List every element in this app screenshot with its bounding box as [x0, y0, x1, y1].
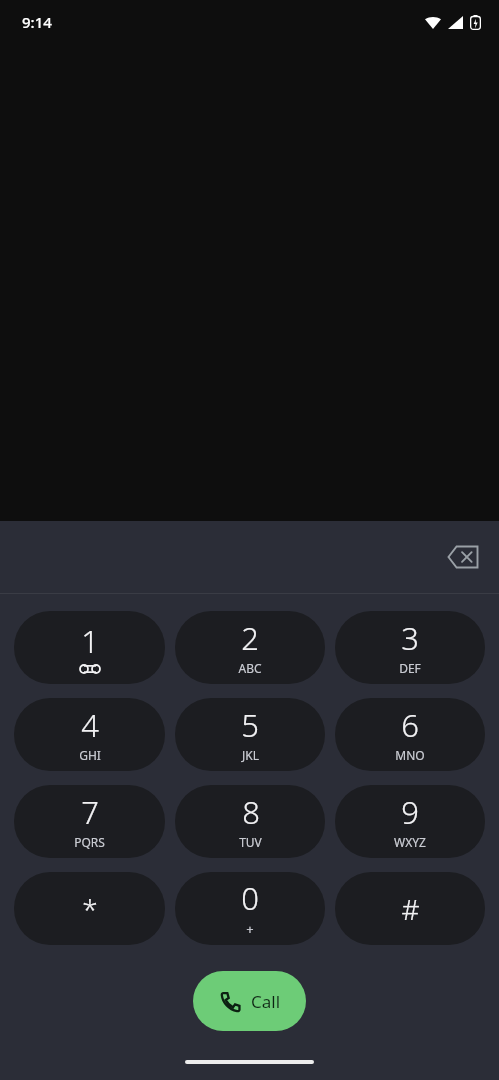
staticText: 9:14 [22, 12, 52, 32]
staticText: # [401, 890, 420, 928]
staticText: JKL [242, 747, 259, 763]
staticText: 9 [401, 791, 419, 833]
staticText: 2 [241, 617, 259, 659]
staticText: 4 [81, 704, 99, 746]
button[interactable]: Call [193, 971, 306, 1031]
button[interactable]: 9 [335, 785, 485, 858]
button[interactable]: 1 [14, 611, 165, 684]
button[interactable]: 3 [335, 611, 485, 684]
staticText: 5 [241, 704, 259, 746]
button[interactable]: 4 [14, 698, 165, 771]
staticText: GHI [79, 747, 101, 763]
staticText: 7 [81, 791, 99, 833]
button[interactable]: Backspace [435, 529, 491, 585]
staticText: 3 [401, 617, 419, 659]
staticText: TUV [239, 834, 262, 850]
button[interactable]: 0 [175, 872, 325, 945]
staticText: WXYZ [394, 834, 426, 850]
staticText: * [82, 890, 98, 928]
button[interactable]: * [14, 872, 165, 945]
button[interactable]: 7 [14, 785, 165, 858]
button[interactable]: 2 [175, 611, 325, 684]
button[interactable]: # [335, 872, 485, 945]
button[interactable]: 5 [175, 698, 325, 771]
staticText: 8 [242, 791, 260, 833]
staticText: 6 [401, 704, 419, 746]
staticText: ABC [238, 660, 262, 676]
staticText: 1 [81, 620, 99, 662]
button[interactable]: 6 [335, 698, 485, 771]
button[interactable]: 8 [175, 785, 325, 858]
staticText: DEF [399, 660, 421, 676]
staticText: MNO [395, 747, 425, 763]
staticText: + [246, 920, 254, 938]
staticText: Call [251, 990, 281, 1013]
staticText: 0 [241, 877, 259, 919]
staticText: PQRS [74, 834, 105, 850]
